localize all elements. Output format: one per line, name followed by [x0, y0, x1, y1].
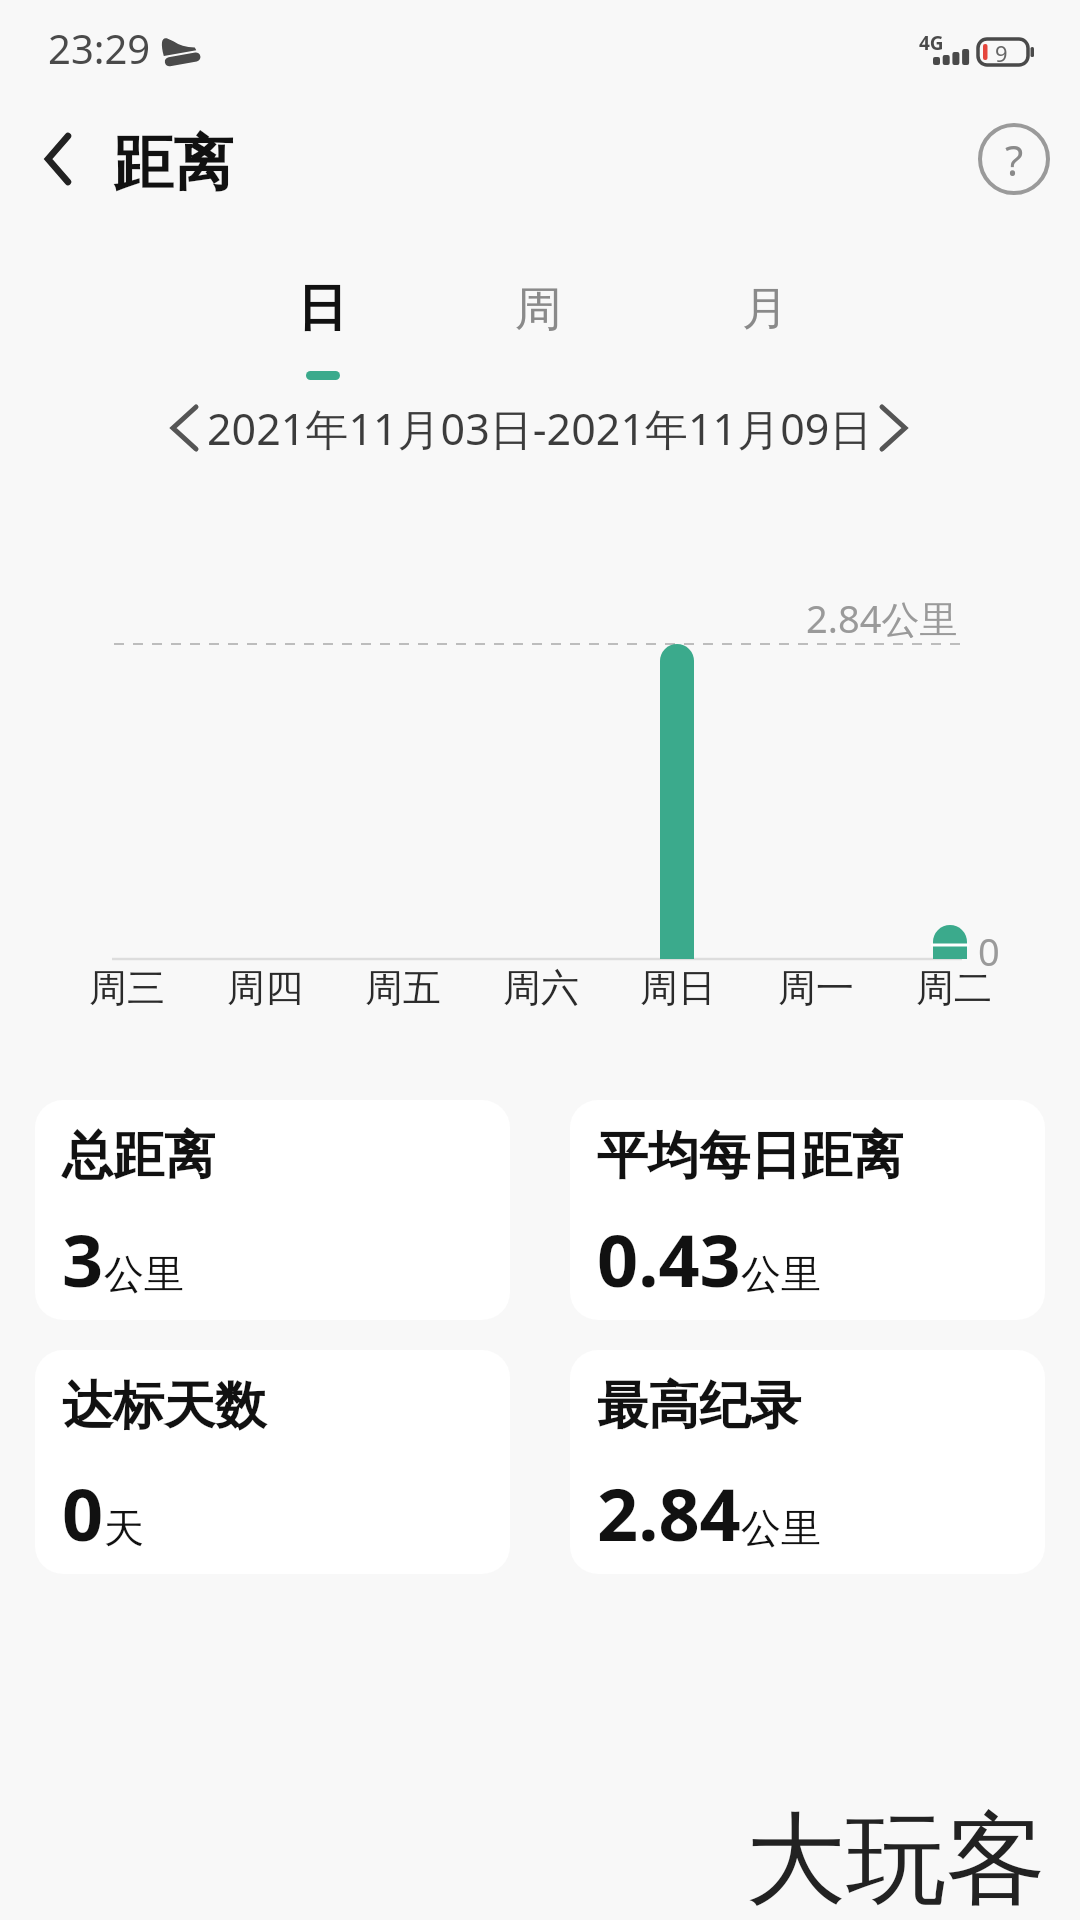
staticText: 周一	[778, 964, 854, 1012]
staticText: 4G	[919, 30, 944, 56]
staticText: 3	[62, 1210, 104, 1308]
staticText: 公里	[741, 1249, 821, 1299]
staticText: 周五	[365, 964, 441, 1012]
staticText: 周二	[916, 964, 992, 1012]
staticText: 2.84	[597, 1464, 741, 1562]
staticText: 周六	[503, 964, 579, 1012]
staticText: 2.84公里	[806, 592, 958, 638]
staticText: 月	[742, 280, 788, 338]
staticText: ?	[1005, 131, 1024, 188]
staticText: 0.43	[597, 1210, 741, 1308]
staticText: 公里	[104, 1249, 184, 1299]
staticText: 天	[104, 1503, 144, 1553]
staticText: 平均每日距离	[597, 1124, 903, 1188]
button[interactable]: 总距离	[35, 1100, 510, 1320]
button[interactable]: 最高纪录	[570, 1350, 1045, 1574]
staticText: 距离	[113, 126, 233, 202]
button[interactable]: 周	[513, 280, 563, 350]
staticText: 0	[62, 1464, 104, 1562]
staticText: 日	[297, 277, 347, 340]
button[interactable]: 月	[740, 280, 790, 350]
staticText: 周	[515, 280, 562, 339]
staticText: 0	[978, 925, 1000, 977]
staticText: 周三	[89, 964, 165, 1012]
staticText: 周日	[640, 964, 716, 1012]
button[interactable]	[28, 120, 88, 192]
button[interactable]: 日	[297, 277, 347, 353]
staticText: 大玩客	[746, 1798, 1046, 1920]
button[interactable]	[868, 398, 918, 458]
staticText: 总距离	[62, 1124, 215, 1188]
staticText: 9	[995, 38, 1008, 68]
staticText: 2021年11月03日-2021年11月09日	[207, 399, 873, 458]
button[interactable]	[160, 398, 210, 458]
staticText: 达标天数	[62, 1374, 266, 1438]
staticText: 公里	[741, 1503, 821, 1553]
button[interactable]: ?	[976, 121, 1052, 197]
staticText: 23:29	[48, 21, 151, 75]
staticText: 周四	[227, 964, 303, 1012]
button[interactable]: 平均每日距离	[570, 1100, 1045, 1320]
button[interactable]: 达标天数	[35, 1350, 510, 1574]
staticText: 最高纪录	[597, 1374, 801, 1438]
